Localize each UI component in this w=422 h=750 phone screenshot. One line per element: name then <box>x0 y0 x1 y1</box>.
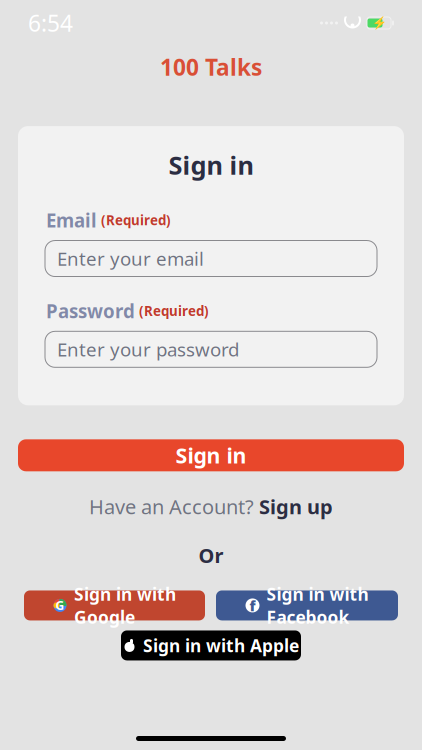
button[interactable]: Sign in with Apple <box>121 630 301 660</box>
staticText: Email <box>46 208 97 232</box>
staticText: 6:54 <box>28 8 73 38</box>
staticText: Sign in with Google <box>74 582 176 628</box>
button[interactable]: G <box>24 590 205 620</box>
staticText: Sign in with Facebook <box>266 582 368 628</box>
staticText: Sign in with Apple <box>143 634 299 657</box>
staticText: Have an Account? <box>89 493 254 520</box>
button[interactable]: Enter your email <box>45 240 377 276</box>
button[interactable]: Have an Account? <box>89 493 333 520</box>
staticText: Enter your password <box>57 337 239 362</box>
staticText: Sign up <box>259 493 333 520</box>
staticText: f <box>249 596 255 615</box>
button[interactable]: f <box>216 590 398 620</box>
staticText: ⚡ <box>371 16 386 30</box>
staticText: Password <box>46 298 135 323</box>
staticText: Or <box>198 542 223 568</box>
staticText: Sign in <box>168 148 253 182</box>
button[interactable]: Sign in <box>18 439 404 471</box>
staticText: Sign in <box>175 441 246 469</box>
button[interactable]: Enter your password <box>45 331 377 367</box>
staticText: (Required) <box>139 302 209 320</box>
staticText: 100 Talks <box>160 52 262 82</box>
staticText: (Required) <box>101 211 171 229</box>
staticText: G <box>55 597 64 613</box>
staticText: Enter your email <box>57 246 204 271</box>
